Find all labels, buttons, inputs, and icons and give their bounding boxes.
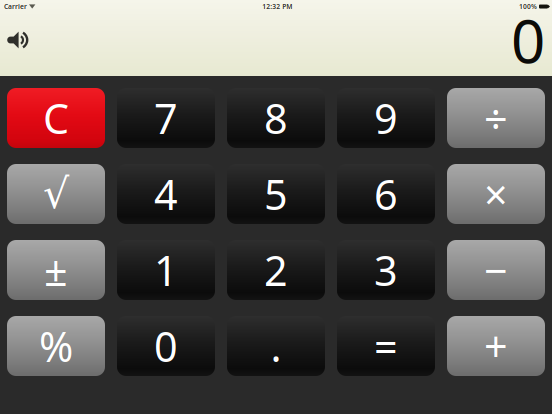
staticText: 4 — [154, 167, 178, 221]
button[interactable]: 7 — [117, 88, 215, 148]
button[interactable]: 6 — [337, 164, 435, 224]
staticText: 12:32 PM — [262, 2, 292, 11]
staticText: ± — [44, 243, 68, 297]
staticText: 0 — [511, 0, 545, 80]
staticText: 7 — [154, 91, 178, 145]
staticText: Carrier — [4, 2, 27, 11]
staticText: √ — [43, 170, 69, 217]
button[interactable]: 9 — [337, 88, 435, 148]
button[interactable]: C — [7, 88, 105, 148]
staticText: 2 — [264, 243, 288, 297]
button[interactable]: = — [337, 316, 435, 376]
button[interactable]: ± — [7, 240, 105, 300]
staticText: 5 — [264, 167, 288, 221]
button[interactable]: + — [447, 316, 545, 376]
staticText: . — [270, 319, 281, 373]
staticText: × — [484, 167, 508, 221]
button[interactable]: . — [227, 316, 325, 376]
staticText: − — [484, 243, 508, 297]
button[interactable]: √ — [7, 164, 105, 224]
staticText: ÷ — [484, 91, 508, 145]
staticText: 6 — [374, 167, 398, 221]
button[interactable]: 4 — [117, 164, 215, 224]
staticText: 8 — [264, 91, 288, 145]
staticText: = — [374, 319, 398, 373]
staticText: 3 — [374, 243, 398, 297]
staticText: 100% — [519, 2, 537, 11]
button[interactable]: 1 — [117, 240, 215, 300]
staticText: 1 — [154, 243, 178, 297]
button[interactable]: ÷ — [447, 88, 545, 148]
staticText: + — [484, 319, 508, 373]
button[interactable]: 2 — [227, 240, 325, 300]
button[interactable]: × — [447, 164, 545, 224]
button[interactable]: 3 — [337, 240, 435, 300]
staticText: % — [39, 319, 73, 373]
staticText: 9 — [374, 91, 398, 145]
button[interactable]: 0 — [117, 316, 215, 376]
button[interactable]: 8 — [227, 88, 325, 148]
button[interactable]: 5 — [227, 164, 325, 224]
staticText: 0 — [154, 319, 178, 373]
button[interactable]: − — [447, 240, 545, 300]
staticText: C — [43, 91, 69, 145]
button[interactable]: % — [7, 316, 105, 376]
